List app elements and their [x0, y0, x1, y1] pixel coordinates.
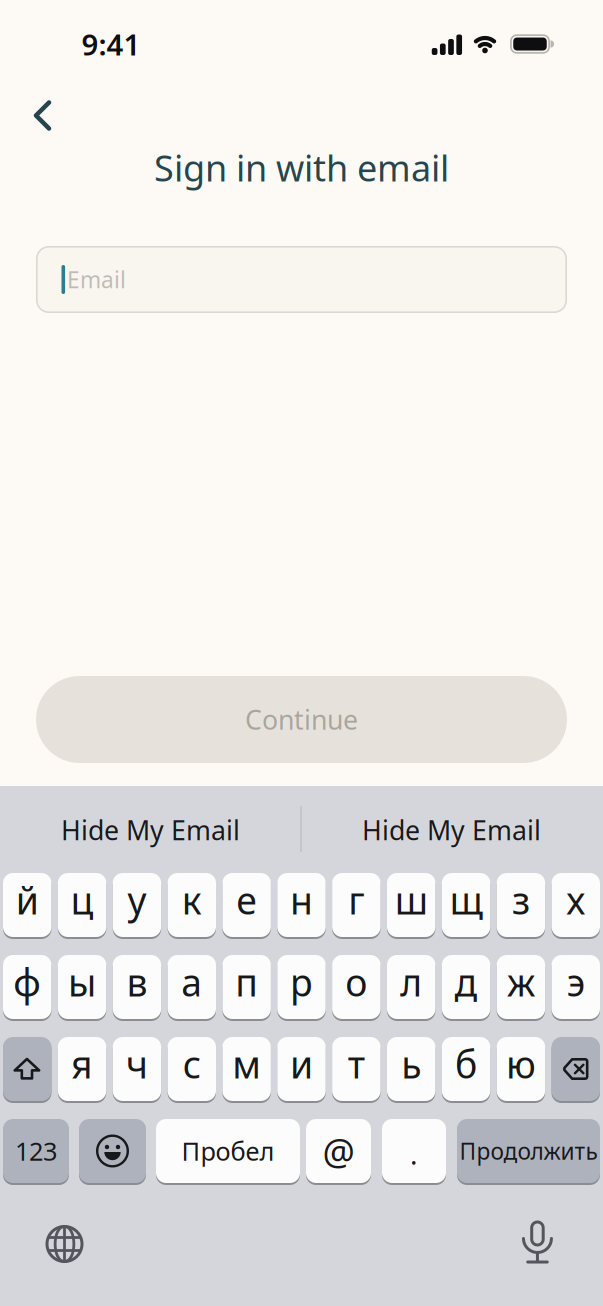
button[interactable]: б — [442, 1037, 490, 1101]
button[interactable]: л — [387, 955, 435, 1019]
button[interactable]: Dictate — [523, 1220, 552, 1263]
button[interactable]: ю — [497, 1037, 545, 1101]
button[interactable]: ф — [3, 955, 51, 1019]
staticText: Email — [67, 264, 126, 294]
staticText: Hide My Email — [362, 812, 541, 848]
staticText: Continue — [245, 702, 358, 737]
staticText: Sign in with email — [154, 144, 449, 191]
staticText: е — [236, 875, 257, 925]
button[interactable]: Continue — [36, 676, 567, 763]
button[interactable]: ч — [113, 1037, 161, 1101]
staticText: Пробел — [181, 1134, 274, 1168]
button[interactable]: 123 — [3, 1119, 69, 1183]
button[interactable]: я — [58, 1037, 106, 1101]
staticText: ы — [68, 957, 96, 1007]
button[interactable]: х — [551, 873, 600, 937]
button[interactable]: э — [551, 955, 600, 1019]
staticText: с — [183, 1039, 201, 1089]
staticText: . — [410, 1135, 418, 1173]
staticText: д — [455, 957, 478, 1007]
button[interactable]: Next keyboard — [45, 1225, 83, 1263]
staticText: ь — [401, 1039, 421, 1089]
staticText: ю — [506, 1039, 536, 1089]
staticText: о — [345, 957, 367, 1007]
staticText: г — [348, 875, 364, 925]
button[interactable]: Shift — [3, 1037, 51, 1101]
staticText: щ — [450, 875, 483, 925]
button[interactable]: Emoji — [79, 1119, 146, 1183]
staticText: ф — [13, 957, 41, 1007]
button[interactable]: т — [332, 1037, 381, 1101]
button[interactable]: ш — [387, 873, 435, 937]
staticText: Hide My Email — [61, 812, 240, 848]
staticText: 9:41 — [81, 24, 140, 63]
button[interactable]: . — [382, 1119, 446, 1183]
staticText: б — [455, 1039, 477, 1089]
button[interactable]: @ — [306, 1119, 371, 1183]
staticText: ш — [395, 875, 428, 925]
button[interactable]: Продолжить — [457, 1119, 600, 1183]
staticText: 123 — [15, 1134, 57, 1168]
button[interactable]: Hide My Email — [61, 812, 240, 848]
staticText: и — [290, 1039, 313, 1089]
staticText: л — [400, 957, 422, 1007]
button[interactable]: д — [442, 955, 490, 1019]
staticText: ж — [507, 957, 535, 1007]
staticText: Продолжить — [459, 1136, 597, 1166]
button[interactable]: г — [332, 873, 381, 937]
button[interactable]: е — [222, 873, 271, 937]
button[interactable]: а — [168, 955, 216, 1019]
button[interactable]: Email — [36, 246, 567, 313]
staticText: х — [566, 875, 585, 925]
button[interactable]: Hide My Email — [362, 812, 541, 848]
button[interactable]: ь — [387, 1037, 435, 1101]
staticText: ч — [126, 1039, 148, 1089]
staticText: н — [290, 875, 313, 925]
staticText: т — [348, 1039, 365, 1089]
button[interactable]: щ — [442, 873, 490, 937]
staticText: @ — [322, 1127, 354, 1175]
staticText: р — [290, 957, 313, 1007]
button[interactable]: Back — [20, 93, 64, 137]
button[interactable]: о — [332, 955, 381, 1019]
staticText: э — [567, 957, 585, 1007]
button[interactable]: ц — [58, 873, 106, 937]
staticText: ц — [71, 875, 94, 925]
button[interactable]: п — [222, 955, 271, 1019]
staticText: з — [512, 875, 530, 925]
button[interactable]: и — [277, 1037, 326, 1101]
button[interactable]: в — [113, 955, 161, 1019]
button[interactable]: с — [168, 1037, 216, 1101]
button[interactable]: м — [222, 1037, 271, 1101]
button[interactable]: Delete — [551, 1037, 600, 1101]
button[interactable]: н — [277, 873, 326, 937]
button[interactable]: ы — [58, 955, 106, 1019]
button[interactable]: ж — [497, 955, 545, 1019]
button[interactable]: Пробел — [156, 1119, 300, 1183]
staticText: а — [181, 957, 202, 1007]
staticText: у — [127, 875, 146, 925]
staticText: в — [126, 957, 147, 1007]
button[interactable]: к — [168, 873, 216, 937]
button[interactable]: р — [277, 955, 326, 1019]
staticText: м — [232, 1039, 261, 1089]
staticText: я — [71, 1039, 93, 1089]
staticText: й — [16, 875, 39, 925]
button[interactable]: й — [3, 873, 51, 937]
button[interactable]: з — [497, 873, 545, 937]
staticText: п — [235, 957, 258, 1007]
button[interactable]: у — [113, 873, 161, 937]
staticText: к — [182, 875, 202, 925]
